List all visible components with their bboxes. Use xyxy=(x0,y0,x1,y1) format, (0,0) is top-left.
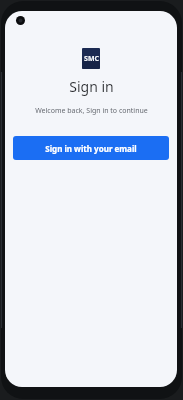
staticText: Sign in with your email xyxy=(45,143,137,154)
other: Front camera xyxy=(16,16,25,25)
button[interactable]: Sign in with your email xyxy=(13,136,169,160)
staticText: SMC xyxy=(84,54,99,64)
staticText: Welcome back, Sign in to continue xyxy=(35,106,148,116)
staticText: Sign in xyxy=(69,77,114,96)
